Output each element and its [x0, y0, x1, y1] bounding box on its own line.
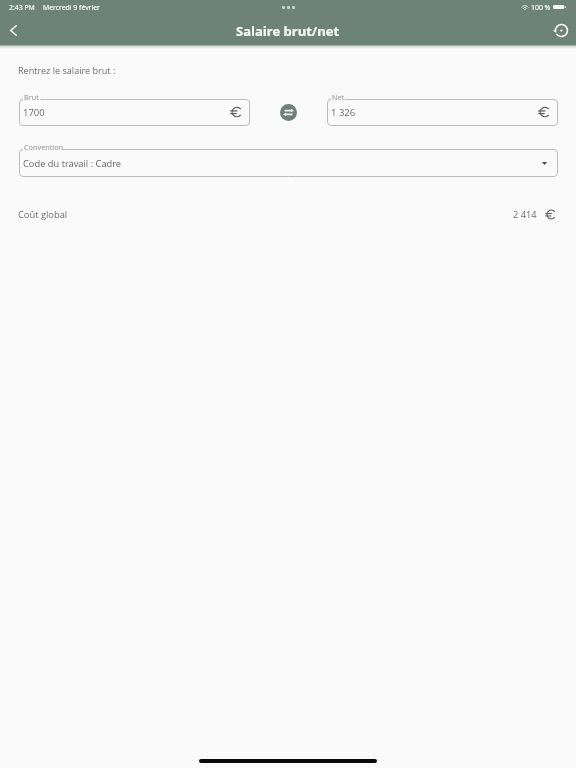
staticText: Salaire brut/net: [236, 22, 340, 40]
button[interactable]: History: [544, 16, 576, 45]
staticText: Net: [332, 92, 345, 102]
button[interactable]: Convention: [19, 149, 558, 177]
staticText: 2:43 PM: [9, 3, 35, 12]
staticText: 100 %: [531, 3, 551, 12]
staticText: Brut: [24, 92, 39, 102]
staticText: Mercredi 9 février: [43, 3, 100, 12]
staticText: Convention: [24, 142, 64, 152]
staticText: Rentrez le salaire brut :: [18, 64, 116, 76]
button[interactable]: Swap: [280, 104, 297, 121]
staticText: 1 326: [331, 106, 356, 119]
staticText: 2 414: [513, 208, 537, 221]
staticText: 1700: [23, 106, 45, 119]
button[interactable]: Back: [0, 16, 26, 45]
staticText: Coût global: [18, 208, 68, 221]
staticText: Code du travail : Cadre: [23, 157, 122, 170]
